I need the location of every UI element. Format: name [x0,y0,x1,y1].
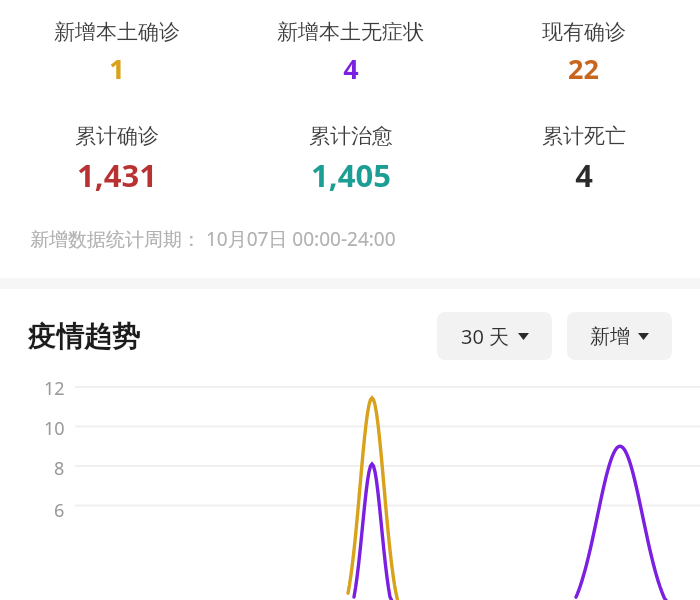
staticText: 新增本土无症状 [277,19,424,45]
staticText: 1,405 [311,154,391,196]
button[interactable]: 现有确诊 [467,19,700,87]
staticText: 4 [575,154,593,196]
button[interactable]: 30 天 [437,312,552,360]
staticText: 累计治愈 [309,123,393,149]
staticText: 12 [44,376,65,399]
staticText: 8 [54,456,65,479]
staticText: 1 [109,50,125,87]
staticText: 4 [343,50,359,87]
staticText: 现有确诊 [542,19,626,45]
button[interactable]: 累计治愈 [234,123,467,196]
staticText: 新增 [590,324,630,349]
staticText: 新增数据统计周期： 10月07日 00:00-24:00 [30,226,396,252]
button[interactable]: 新增本土确诊 [0,19,234,87]
staticText: 10 [44,416,65,439]
button[interactable]: 累计死亡 [467,123,700,196]
staticText: 累计死亡 [542,123,626,149]
staticText: 30 天 [461,323,510,350]
button[interactable]: 累计确诊 [0,123,234,196]
staticText: 1,431 [77,154,157,196]
button[interactable]: 新增本土无症状 [234,19,467,87]
staticText: 22 [568,50,599,87]
staticText: 6 [54,498,65,521]
staticText: 新增本土确诊 [54,19,180,45]
staticText: 累计确诊 [75,123,159,149]
button[interactable]: 新增 [567,312,672,360]
staticText: 疫情趋势 [28,319,140,354]
